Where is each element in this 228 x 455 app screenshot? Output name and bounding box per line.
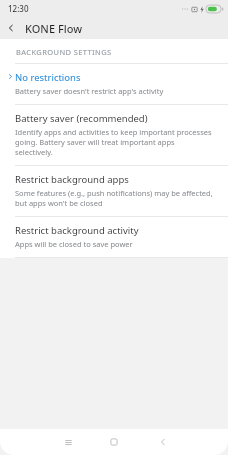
button[interactable]: Battery saver (recommended) (0, 105, 228, 165)
staticText: Battery saver (recommended) (15, 112, 148, 125)
button[interactable]: Home (104, 432, 124, 452)
staticText: Restrict background apps (15, 173, 129, 186)
staticText: 12:30 (8, 3, 29, 14)
staticText: KONE Flow (25, 21, 83, 36)
button[interactable]: Back (153, 432, 173, 452)
button[interactable]: Back (0, 17, 22, 39)
button[interactable]: Restrict background activity (0, 217, 228, 257)
staticText: Some features (e.g., push notifications)… (15, 188, 214, 208)
button[interactable]: Restrict background apps (0, 166, 228, 216)
staticText: Apps will be closed to save power (15, 239, 133, 249)
button[interactable]: No restrictions (0, 64, 228, 104)
staticText: BACKGROUND SETTINGS (16, 47, 112, 57)
button[interactable]: Recent apps (58, 432, 78, 452)
staticText: Identify apps and activities to keep imp… (15, 127, 214, 157)
staticText: Battery saver doesn't restrict app's act… (15, 86, 164, 96)
staticText: Restrict background activity (15, 224, 139, 237)
staticText: No restrictions (15, 71, 81, 84)
